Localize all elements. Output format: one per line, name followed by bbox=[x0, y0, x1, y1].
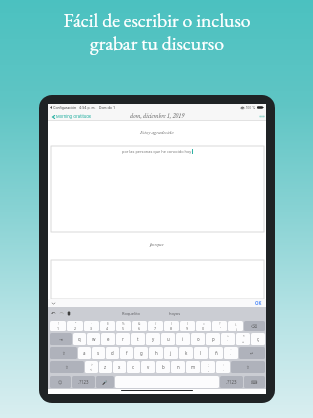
staticText: t bbox=[137, 336, 139, 342]
button[interactable]: j bbox=[164, 347, 178, 359]
staticText: Dom dic 1 bbox=[99, 106, 115, 110]
staticText: k bbox=[185, 350, 188, 356]
button[interactable]: ⇥ bbox=[50, 333, 72, 345]
button[interactable]: ç bbox=[251, 333, 265, 345]
button[interactable]: x bbox=[113, 361, 126, 373]
button[interactable]: Redo bbox=[59, 311, 64, 316]
button[interactable]: r bbox=[116, 333, 130, 345]
button[interactable]: $ bbox=[100, 321, 115, 331]
button[interactable]: y bbox=[146, 333, 160, 345]
staticText: ⇥ bbox=[59, 337, 63, 342]
button[interactable]: Roquelito bbox=[122, 311, 141, 316]
button[interactable]: ⌫ bbox=[244, 321, 265, 331]
button[interactable]: ⇧ bbox=[231, 361, 265, 373]
button[interactable]: ) bbox=[180, 321, 195, 331]
staticText: < bbox=[90, 367, 93, 372]
button[interactable]: q bbox=[73, 333, 86, 345]
button[interactable]: f bbox=[120, 347, 133, 359]
staticText: + bbox=[242, 339, 245, 344]
staticText: 🎤 bbox=[102, 380, 108, 385]
button[interactable]: Collapse bbox=[51, 301, 56, 306]
staticText: ⌫ bbox=[251, 324, 258, 329]
button[interactable]: e bbox=[101, 333, 115, 345]
button[interactable]: " bbox=[67, 321, 83, 331]
button[interactable]: por las personas que he conocido hoy bbox=[51, 146, 264, 232]
button[interactable]: & bbox=[132, 321, 147, 331]
staticText: Fácil de escribir o incluso grabar tu di… bbox=[63, 7, 251, 55]
button[interactable] bbox=[51, 260, 264, 299]
staticText: 100 % bbox=[246, 106, 256, 110]
button[interactable]: Paste bbox=[67, 311, 71, 316]
staticText: 1 bbox=[57, 326, 60, 331]
staticText: Morning Gratitude bbox=[56, 114, 92, 119]
button[interactable]: l bbox=[194, 347, 208, 359]
button[interactable]: ñ bbox=[209, 347, 223, 359]
staticText: p bbox=[212, 336, 215, 342]
button[interactable]: i bbox=[176, 333, 190, 345]
staticText: ` bbox=[227, 339, 229, 344]
staticText: , bbox=[208, 367, 209, 372]
button[interactable]: p bbox=[206, 333, 220, 345]
staticText: h bbox=[155, 350, 158, 356]
staticText: 8 bbox=[170, 326, 173, 331]
button[interactable]: u bbox=[161, 333, 175, 345]
button[interactable]: Undo bbox=[51, 311, 56, 316]
staticText: u bbox=[167, 336, 170, 342]
button[interactable]: ⇪ bbox=[50, 347, 77, 359]
button[interactable]: c bbox=[127, 361, 140, 373]
button[interactable]: ; bbox=[201, 361, 215, 373]
button[interactable]: ⇧ bbox=[50, 361, 84, 373]
staticText: ⌨ bbox=[251, 380, 258, 385]
button[interactable]: z bbox=[99, 361, 112, 373]
button[interactable]: ¿ bbox=[228, 321, 243, 331]
button[interactable]: a bbox=[78, 347, 91, 359]
staticText: f bbox=[126, 350, 128, 356]
button[interactable]: = bbox=[196, 321, 211, 331]
button[interactable]: o bbox=[191, 333, 205, 345]
button[interactable]: hoyos bbox=[169, 311, 181, 316]
staticText: 0 bbox=[202, 326, 205, 331]
button[interactable]: ⌨ bbox=[244, 376, 265, 388]
staticText: ' bbox=[220, 326, 221, 331]
button[interactable]: Back bbox=[52, 114, 92, 119]
staticText: 4 bbox=[106, 326, 109, 331]
button[interactable]: ¨ bbox=[224, 347, 238, 359]
button[interactable]: : bbox=[216, 361, 230, 373]
button[interactable]: s bbox=[92, 347, 105, 359]
staticText: ↵ bbox=[250, 351, 254, 356]
button[interactable]: k bbox=[179, 347, 193, 359]
staticText: 6 bbox=[138, 326, 141, 331]
button[interactable]: > bbox=[85, 361, 98, 373]
button[interactable]: g bbox=[134, 347, 148, 359]
button[interactable]: b bbox=[156, 361, 170, 373]
button[interactable]: d bbox=[106, 347, 119, 359]
button[interactable]: t bbox=[131, 333, 145, 345]
button[interactable]: More options bbox=[257, 112, 266, 120]
button[interactable]: · bbox=[84, 321, 99, 331]
button[interactable]: h bbox=[149, 347, 163, 359]
staticText: 5 bbox=[122, 326, 125, 331]
button[interactable]: ? bbox=[212, 321, 227, 331]
button[interactable]: % bbox=[116, 321, 131, 331]
button[interactable]: ( bbox=[164, 321, 179, 331]
staticText: por las personas que he conocido hoy bbox=[122, 149, 192, 154]
button[interactable]: * bbox=[236, 333, 250, 345]
staticText: r bbox=[122, 336, 124, 342]
staticText: ! bbox=[58, 322, 59, 326]
staticText: 9 bbox=[186, 326, 189, 331]
button[interactable]: ^ bbox=[221, 333, 235, 345]
button[interactable]: OK bbox=[255, 300, 262, 306]
staticText: e bbox=[107, 336, 110, 342]
button[interactable]: m bbox=[186, 361, 200, 373]
button[interactable]: ! bbox=[50, 321, 66, 331]
button[interactable]: v bbox=[141, 361, 155, 373]
button[interactable]: .?123 bbox=[220, 376, 243, 388]
button[interactable]: n bbox=[171, 361, 185, 373]
button[interactable]: w bbox=[87, 333, 100, 345]
button[interactable]: ↵ bbox=[239, 347, 265, 359]
button[interactable]: .?123 bbox=[72, 376, 95, 388]
button[interactable]: 🎤 bbox=[96, 376, 114, 388]
button[interactable]: / bbox=[148, 321, 163, 331]
button[interactable]: ☺ bbox=[50, 376, 71, 388]
